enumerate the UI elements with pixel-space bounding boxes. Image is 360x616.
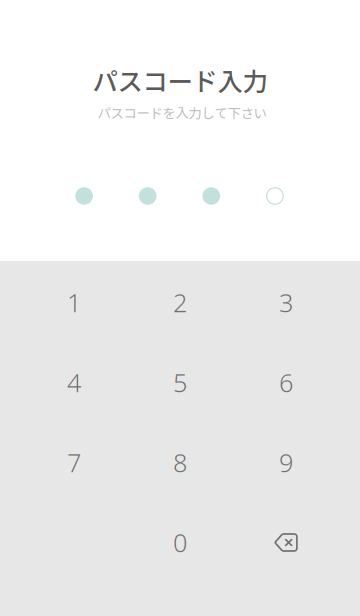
button[interactable]: 5 — [127, 342, 233, 422]
button[interactable]: 4 — [21, 342, 127, 422]
staticText: 1 — [67, 286, 81, 319]
button[interactable]: 6 — [233, 342, 339, 422]
button[interactable]: 8 — [127, 422, 233, 502]
staticText: 0 — [173, 526, 187, 559]
staticText: 2 — [173, 286, 187, 319]
staticText: 3 — [279, 286, 293, 319]
staticText: 5 — [173, 366, 187, 399]
button[interactable]: 0 — [127, 502, 233, 582]
staticText: 8 — [173, 446, 187, 479]
staticText: パスコード入力 — [92, 62, 267, 98]
staticText: 6 — [279, 366, 293, 399]
staticText: 7 — [67, 446, 81, 479]
button[interactable]: 9 — [233, 422, 339, 502]
button[interactable]: 削除 — [233, 502, 339, 582]
button[interactable]: 3 — [233, 262, 339, 342]
button[interactable]: 1 — [21, 262, 127, 342]
staticText: パスコードを入力して下さい — [97, 103, 266, 122]
button[interactable]: 7 — [21, 422, 127, 502]
staticText: 4 — [67, 366, 81, 399]
button[interactable]: 2 — [127, 262, 233, 342]
staticText: 9 — [279, 446, 293, 479]
